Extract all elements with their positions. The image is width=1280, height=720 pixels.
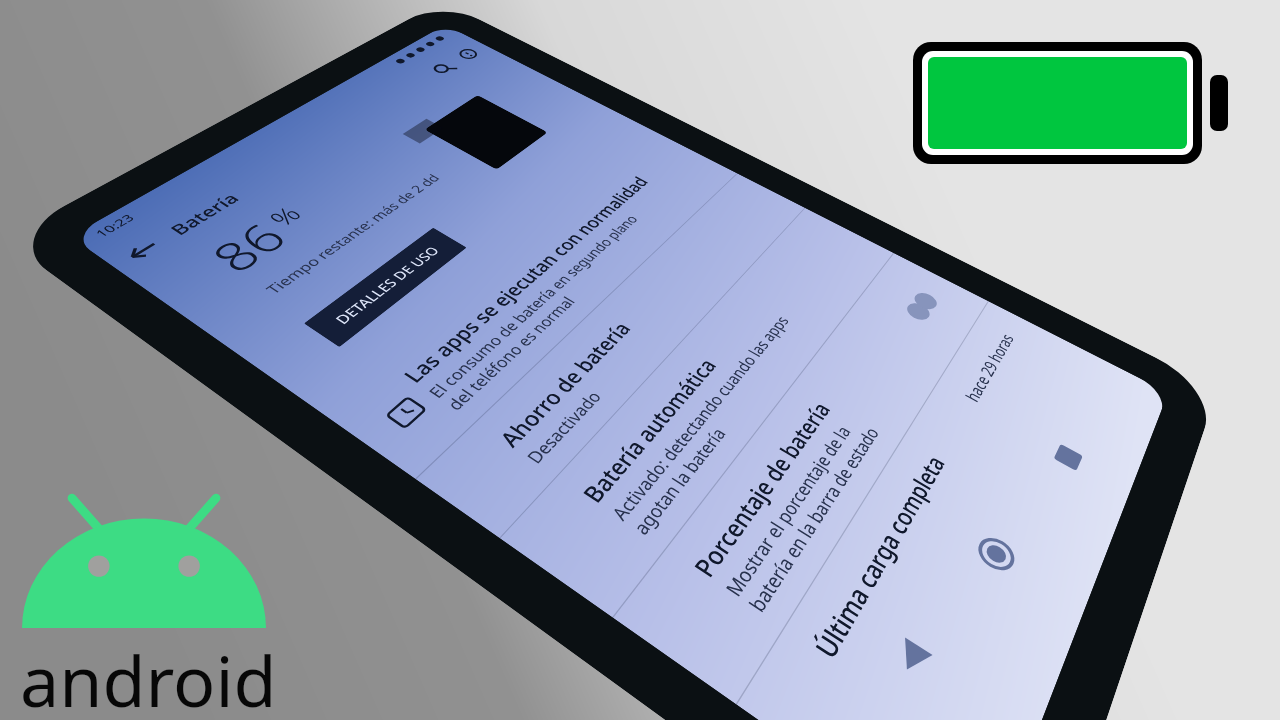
staticText: Mostrar el porcentaje de la batería en l… — [719, 410, 884, 617]
staticText: DETALLES DE USO — [330, 243, 444, 328]
staticText: Batería — [163, 189, 244, 239]
button[interactable]: Back — [876, 621, 949, 696]
staticText: % — [260, 201, 310, 232]
button[interactable]: Recents — [1042, 433, 1095, 482]
staticText: 86 — [194, 212, 302, 283]
button[interactable]: Battery full — [913, 42, 1228, 164]
staticText: Tiempo restante: más de 2 dd — [261, 171, 444, 297]
staticText: Activado: detectando cuando las apps ago… — [606, 312, 813, 539]
staticText: Última carga completa — [805, 449, 951, 665]
staticText: El consumo de batería en segundo plano d… — [423, 212, 659, 414]
staticText: hace 29 horas — [960, 329, 1019, 406]
button[interactable]: DETALLES DE USO — [304, 227, 467, 347]
staticText: Las apps se ejecutan con normalidad — [396, 173, 653, 387]
button[interactable]: Home — [964, 523, 1029, 587]
button[interactable]: Back — [105, 227, 180, 275]
button[interactable]: Search — [417, 54, 470, 84]
staticText: Batería automática — [574, 353, 722, 508]
staticText: Desactivado — [521, 387, 607, 468]
staticText: Porcentaje de batería — [685, 396, 837, 583]
button[interactable]: Porcentaje de batería — [613, 253, 988, 704]
button[interactable]: Help — [442, 40, 494, 68]
staticText: android — [20, 632, 277, 720]
button[interactable]: Batería automática — [500, 208, 893, 617]
staticText: Ahorro de batería — [491, 317, 637, 452]
button[interactable]: Las apps se ejecutan con normalidad — [319, 133, 737, 479]
staticText: 10:23 — [91, 211, 138, 240]
button[interactable]: Última carga completa — [737, 301, 1045, 720]
button[interactable]: Ahorro de batería — [416, 174, 805, 538]
